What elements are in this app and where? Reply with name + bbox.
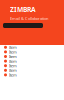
staticText: Item [9, 45, 17, 50]
staticText: Item [9, 49, 17, 54]
staticText: Item [9, 72, 17, 77]
staticText: Item [9, 68, 17, 73]
staticText: ZIMBRA [10, 5, 36, 14]
staticText: Email & Collaboration [10, 16, 48, 21]
staticText: Item [9, 58, 17, 64]
staticText: Item [9, 63, 17, 68]
staticText: Item [9, 54, 17, 59]
